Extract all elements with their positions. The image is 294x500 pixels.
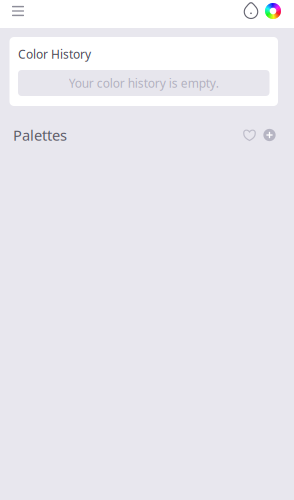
staticText: Your color history is empty. <box>69 75 219 91</box>
button[interactable]: Favorite palettes <box>239 125 259 145</box>
button[interactable]: Eyedropper <box>241 1 263 21</box>
staticText: Palettes <box>13 125 67 145</box>
button[interactable]: Color picker <box>263 1 294 21</box>
staticText: Color History <box>18 46 91 62</box>
button[interactable]: Menu <box>0 1 36 21</box>
button[interactable]: Add palette <box>259 125 279 145</box>
